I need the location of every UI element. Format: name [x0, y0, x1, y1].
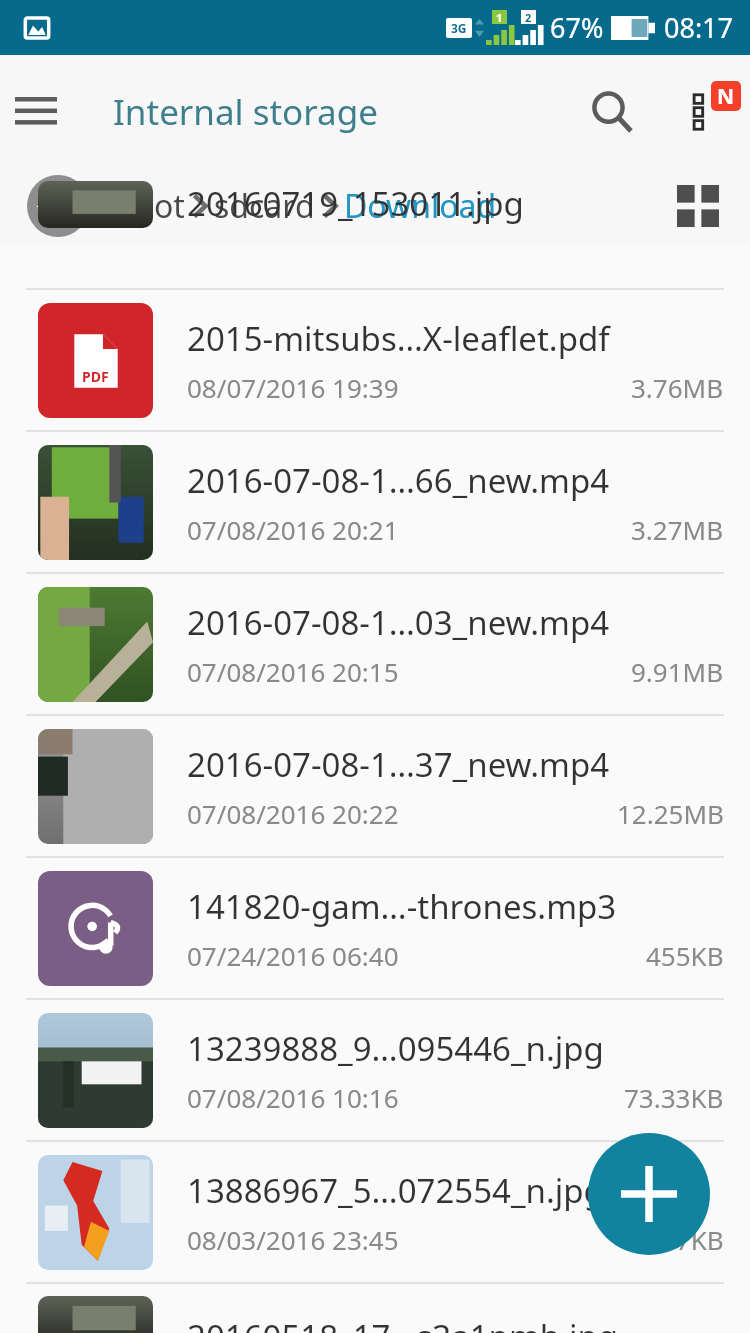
staticText: 3.76MB	[631, 370, 724, 405]
button[interactable]: Download	[344, 184, 497, 228]
staticText: 2016-07-08-1…66_new.mp4	[187, 458, 610, 503]
staticText: 08/03/2016 23:45	[187, 1222, 399, 1257]
staticText: 20160518_17…s3a1pmh.jpg	[187, 1314, 619, 1333]
button[interactable]: 20160719_153011.jpg	[0, 243, 750, 290]
staticText: 12.25MB	[617, 796, 724, 831]
button[interactable]: Search	[574, 74, 650, 150]
staticText: 67%	[550, 9, 604, 46]
button[interactable]: More options	[670, 76, 742, 148]
staticText: 07/24/2016 06:40	[187, 938, 399, 973]
button[interactable]: PDF	[0, 290, 750, 432]
button[interactable]: Switch to grid view	[668, 176, 728, 236]
button[interactable]: Open navigation drawer	[0, 76, 72, 148]
button[interactable]: 2016-07-08-1…37_new.mp4	[0, 716, 750, 858]
button[interactable]: Add	[588, 1133, 710, 1255]
staticText: 07/08/2016 10:16	[187, 1080, 399, 1115]
staticText: 3.27MB	[631, 512, 724, 547]
staticText: PDF	[82, 367, 109, 386]
button[interactable]: 20160518_17…s3a1pmh.jpg	[0, 1284, 750, 1333]
button[interactable]: 2016-07-08-1…66_new.mp4	[0, 432, 750, 574]
staticText: Internal storage	[113, 88, 378, 136]
staticText: 2015-mitsubs…X-leaflet.pdf	[187, 316, 610, 361]
button[interactable]: 141820-gam…-thrones.mp3	[0, 858, 750, 1000]
button[interactable]: 2016-07-08-1…03_new.mp4	[0, 574, 750, 716]
staticText: 08/07/2016 19:39	[187, 370, 399, 405]
staticText: 3G	[451, 20, 467, 36]
button[interactable]: Home	[27, 175, 89, 237]
staticText: 07/08/2016 20:21	[187, 512, 399, 547]
staticText: 141820-gam…-thrones.mp3	[187, 884, 617, 929]
staticText: 455KB	[646, 938, 724, 973]
staticText: 08:17	[664, 9, 734, 46]
staticText: 13239888_9…095446_n.jpg	[187, 1026, 604, 1071]
staticText: N	[717, 82, 735, 111]
staticText: 20160719_153011.jpg	[187, 181, 524, 226]
staticText: 07/08/2016 20:15	[187, 654, 399, 689]
staticText: 13886967_5…072554_n.jpg	[187, 1168, 604, 1213]
button[interactable]: sdcard	[214, 184, 315, 228]
staticText: 73.33KB	[624, 1080, 724, 1115]
button[interactable]: 13886967_5…072554_n.jpg	[0, 1142, 750, 1284]
button[interactable]: 13239888_9…095446_n.jpg	[0, 1000, 750, 1142]
staticText: 07/08/2016 20:22	[187, 796, 399, 831]
button[interactable]: root	[122, 184, 185, 228]
staticText: 2016-07-08-1…03_new.mp4	[187, 600, 610, 645]
staticText: 9.91MB	[631, 654, 724, 689]
staticText: 57KB	[661, 1222, 724, 1257]
staticText: 1	[496, 10, 503, 24]
staticText: 2016-07-08-1…37_new.mp4	[187, 742, 610, 787]
staticText: 2	[525, 10, 532, 24]
